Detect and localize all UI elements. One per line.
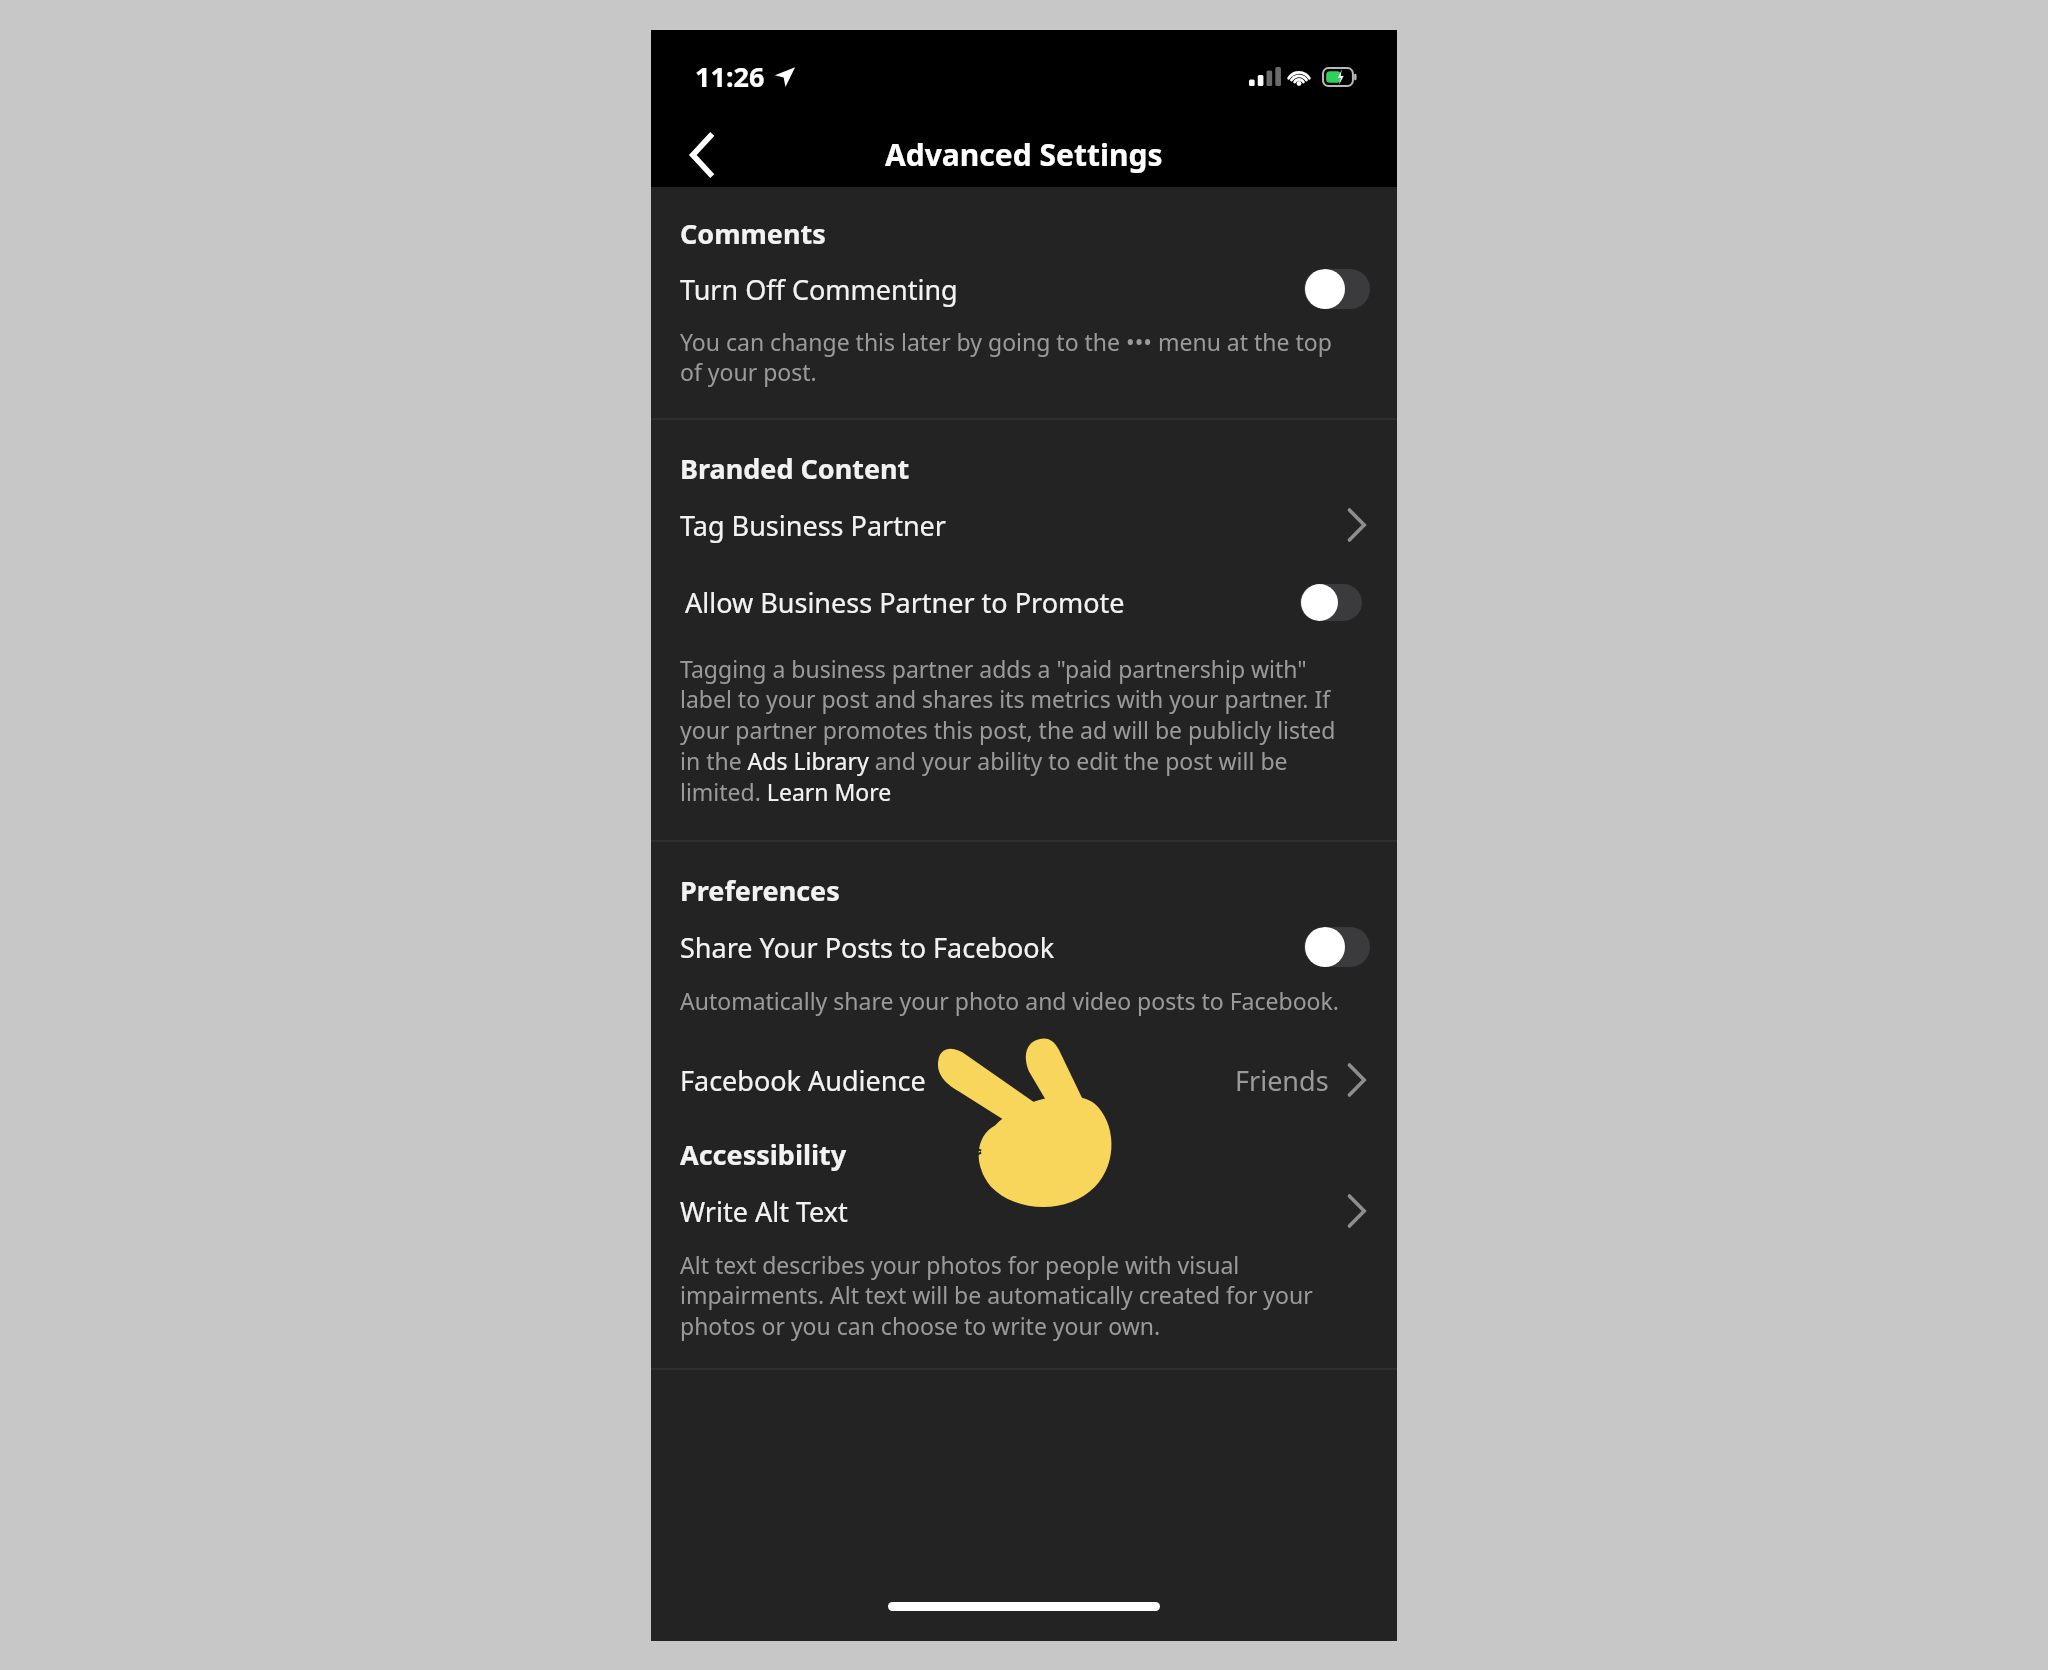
staticText: Tag Business Partner [680, 507, 1347, 544]
staticText: Facebook Audience [680, 1062, 1235, 1099]
staticText: Friends [1235, 1062, 1329, 1099]
staticText: Allow Business Partner to Promote [685, 584, 1300, 621]
staticText: Share Your Posts to Facebook [680, 929, 1304, 966]
staticText: Write Alt Text [680, 1193, 1347, 1230]
button[interactable]: Facebook Audience [651, 1044, 1397, 1116]
staticText: Branded Content [680, 450, 910, 487]
button[interactable]: Write Alt Text [651, 1173, 1397, 1249]
staticText: Alt text describes your photos for peopl… [680, 1249, 1357, 1342]
staticText: Turn Off Commenting [680, 271, 1304, 308]
staticText: Preferences [680, 872, 840, 909]
staticText: 11:26 [695, 58, 765, 95]
staticText: Comments [680, 215, 826, 252]
staticText: Accessibility [680, 1136, 847, 1173]
button[interactable]: Allow Business Partner to Promote [651, 563, 1397, 641]
button[interactable]: Back [673, 126, 731, 184]
button[interactable]: Turn Off Commenting [651, 252, 1397, 326]
button[interactable]: Tag Business Partner [651, 487, 1397, 563]
button[interactable]: Share Your Posts to Facebook [651, 909, 1397, 985]
staticText: You can change this later by going to th… [680, 326, 1357, 388]
staticText: Advanced Settings [885, 134, 1163, 175]
staticText: Automatically share your photo and video… [680, 985, 1339, 1016]
staticText: Tagging a business partner adds a "paid … [680, 653, 1357, 808]
